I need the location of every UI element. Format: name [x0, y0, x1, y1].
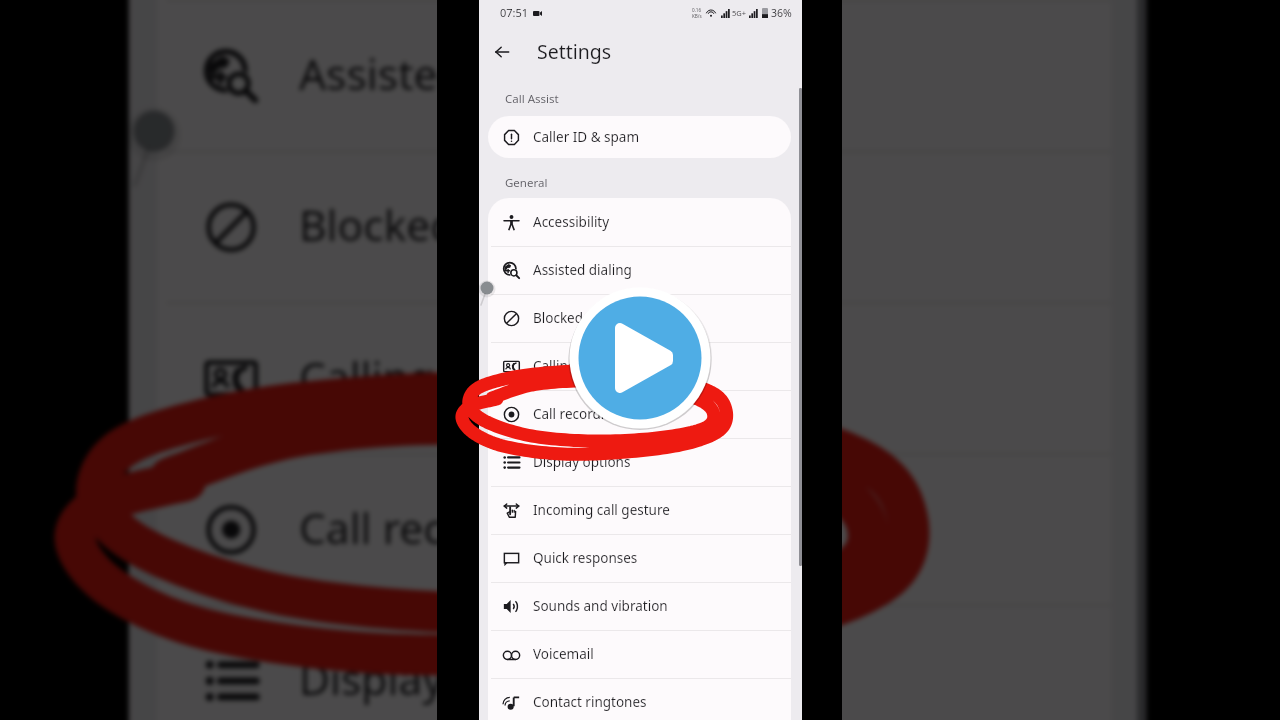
button[interactable]: Play — [568, 286, 712, 430]
button[interactable]: Call recording — [488, 390, 791, 438]
staticText: KB/s — [692, 13, 702, 19]
button[interactable]: Contact ringtones — [488, 678, 791, 720]
button[interactable]: Sounds and vibration — [488, 582, 791, 630]
button[interactable]: Quick responses — [488, 534, 791, 582]
staticText: Calling accounts — [533, 357, 637, 375]
staticText: 0.16 — [692, 7, 702, 13]
staticText: Contact ringtones — [533, 693, 647, 711]
button[interactable]: Back — [488, 38, 516, 66]
staticText: Calling accounts — [299, 349, 626, 405]
staticText: Accessibility — [533, 213, 610, 231]
button[interactable]: Blocked numbers — [488, 294, 791, 342]
button[interactable]: Voicemail — [488, 630, 791, 678]
staticText: Assisted dialing — [533, 261, 632, 279]
staticText: 07:51 — [500, 5, 529, 20]
staticText: 36% — [771, 6, 792, 20]
staticText: Blocked numbers — [299, 197, 649, 254]
staticText: Voicemail — [533, 645, 594, 663]
staticText: Quick responses — [533, 549, 638, 567]
button[interactable]: Accessibility — [488, 198, 791, 246]
button[interactable]: Display options — [488, 438, 791, 486]
button[interactable]: Calling accounts — [488, 342, 791, 390]
staticText: Assisted dialing — [299, 46, 611, 103]
button[interactable]: Assisted dialing — [488, 246, 791, 294]
button[interactable]: Blocked numbers — [157, 150, 1112, 301]
staticText: Display options — [533, 453, 631, 471]
staticText: Sounds and vibration — [533, 597, 668, 615]
staticText: Blocked numbers — [533, 309, 644, 327]
button[interactable]: Call recording — [157, 452, 1112, 604]
staticText: Call Assist — [505, 91, 559, 107]
button[interactable]: Caller ID & spam — [488, 116, 791, 158]
staticText: General — [505, 175, 548, 191]
staticText: Settings — [537, 38, 612, 65]
staticText: Call recording — [299, 500, 576, 556]
staticText: 5G+ — [732, 8, 747, 18]
staticText: Incoming call gesture — [533, 501, 670, 519]
button[interactable]: Assisted dialing — [157, 0, 1112, 150]
staticText: Display options — [299, 651, 608, 708]
button[interactable]: Calling accounts — [157, 301, 1112, 452]
button[interactable]: Display options — [157, 604, 1112, 720]
staticText: Call recording — [533, 405, 621, 423]
staticText: Caller ID & spam — [533, 128, 640, 146]
button[interactable]: Incoming call gesture — [488, 486, 791, 534]
